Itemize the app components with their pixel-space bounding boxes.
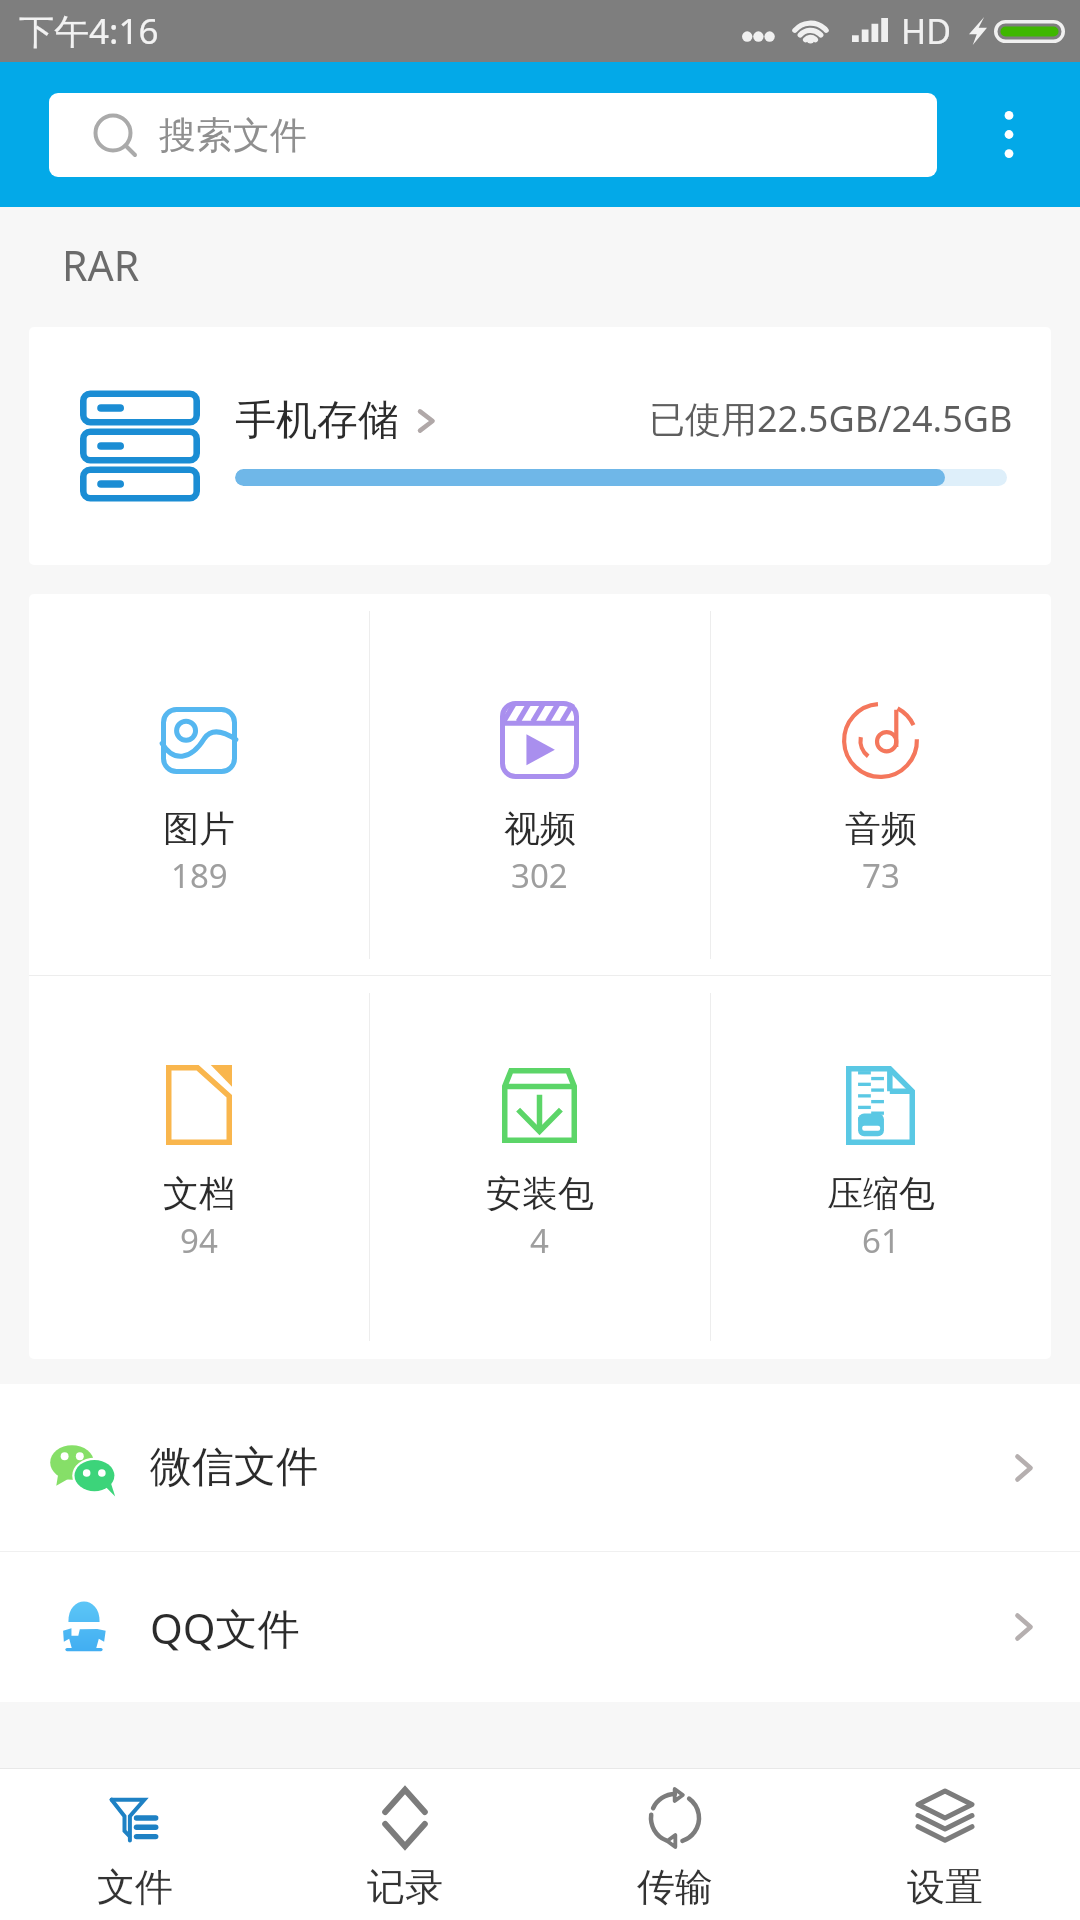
staticText: 传输 bbox=[637, 1863, 713, 1911]
staticText: 压缩包 bbox=[827, 1171, 935, 1216]
staticText: 4 bbox=[530, 1218, 549, 1263]
button[interactable]: 设置 bbox=[810, 1769, 1080, 1920]
staticText: 302 bbox=[511, 853, 568, 898]
button[interactable]: 文档 bbox=[29, 976, 369, 1358]
button[interactable]: 搜索文件 bbox=[49, 93, 937, 177]
staticText: 图片 bbox=[163, 806, 235, 851]
staticText: 视频 bbox=[504, 806, 576, 851]
button[interactable]: QQ文件 bbox=[0, 1552, 1080, 1702]
staticText: RAR bbox=[62, 237, 140, 293]
button[interactable]: 微信文件 bbox=[0, 1384, 1080, 1551]
button[interactable]: More options bbox=[937, 62, 1080, 207]
staticText: 设置 bbox=[907, 1863, 983, 1911]
staticText: 文档 bbox=[163, 1171, 235, 1216]
staticText: 61 bbox=[862, 1218, 900, 1263]
staticText: 189 bbox=[171, 853, 228, 898]
staticText: 手机存储 bbox=[235, 395, 399, 447]
button[interactable]: 音频 bbox=[710, 594, 1051, 976]
button[interactable]: 手机存储 bbox=[29, 327, 1051, 565]
staticText: 下午4:16 bbox=[19, 7, 159, 55]
button[interactable]: 记录 bbox=[270, 1769, 540, 1920]
button[interactable]: 压缩包 bbox=[710, 976, 1051, 1358]
staticText: 94 bbox=[180, 1218, 218, 1263]
staticText: 73 bbox=[862, 853, 900, 898]
button[interactable]: 安装包 bbox=[369, 976, 710, 1358]
staticText: HD bbox=[901, 8, 952, 54]
staticText: QQ文件 bbox=[150, 1599, 300, 1656]
staticText: 安装包 bbox=[486, 1171, 594, 1216]
button[interactable]: 传输 bbox=[540, 1769, 810, 1920]
button[interactable]: 文件 bbox=[0, 1769, 270, 1920]
staticText: 微信文件 bbox=[150, 1441, 318, 1494]
staticText: 已使用22.5GB/24.5GB bbox=[649, 394, 1013, 443]
staticText: 文件 bbox=[97, 1863, 173, 1911]
button[interactable]: 视频 bbox=[369, 594, 710, 976]
staticText: 音频 bbox=[845, 806, 917, 851]
staticText: 搜索文件 bbox=[159, 112, 307, 159]
button[interactable]: 图片 bbox=[29, 594, 369, 976]
staticText: 记录 bbox=[367, 1863, 443, 1911]
